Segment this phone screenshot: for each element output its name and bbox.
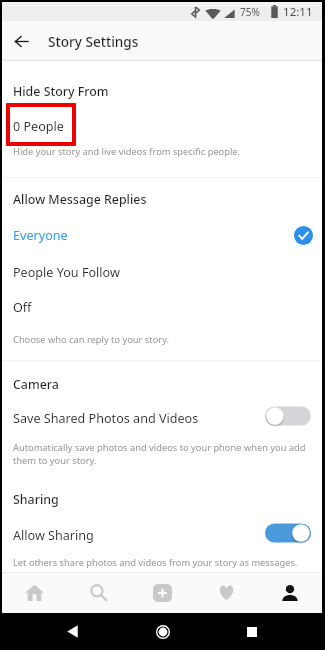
staticText: Everyone [13,227,68,244]
staticText: 75% [240,5,260,19]
staticText: Automatically save photos and videos to … [13,441,309,467]
staticText: People You Follow [13,264,120,281]
button[interactable]: Everyone [2,222,322,249]
button[interactable]: Back [7,27,35,55]
staticText: Sharing [13,491,59,508]
staticText: Hide Story From [13,83,109,100]
button[interactable]: Home [2,572,66,613]
button[interactable]: Home [137,613,188,650]
button[interactable]: Back [47,613,97,650]
staticText: 0 People [13,118,64,135]
button[interactable]: People You Follow [2,259,322,285]
staticText: Allow Sharing [13,527,265,544]
button[interactable]: New post [130,572,194,613]
staticText: Camera [13,376,59,393]
button[interactable]: Off [2,294,322,320]
staticText: Save Shared Photos and Videos [13,410,265,427]
staticText: Allow Message Replies [13,191,147,208]
button[interactable]: Activity [194,572,258,613]
button[interactable]: Recents [227,613,277,650]
staticText: Let others share photos and videos from … [13,556,309,569]
button[interactable]: Profile [258,572,322,613]
button[interactable]: Save Shared Photos and Videos [2,405,322,431]
staticText: 12:11 [283,4,313,20]
button[interactable]: 0 People [2,113,322,139]
staticText: Hide your story and live videos from spe… [13,145,309,158]
staticText: Story Settings [48,32,139,51]
button[interactable]: Search [66,572,130,613]
staticText: Choose who can reply to your story. [13,333,309,346]
staticText: Off [13,299,32,316]
button[interactable]: Allow Sharing [2,522,322,548]
